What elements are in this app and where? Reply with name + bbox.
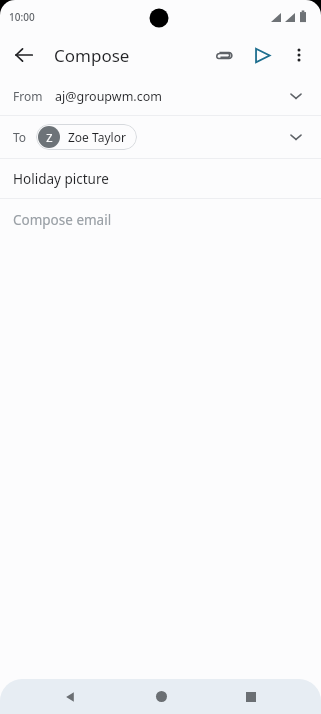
button[interactable]: Holiday picture: [0, 159, 321, 198]
button[interactable]: Back: [50, 679, 90, 714]
button[interactable]: Back: [6, 37, 42, 73]
staticText: Z: [46, 130, 53, 145]
button[interactable]: Attach file: [205, 36, 243, 74]
staticText: Compose email: [13, 211, 112, 229]
staticText: aj@groupwm.com: [55, 88, 162, 105]
button[interactable]: From: [0, 77, 321, 115]
button[interactable]: Send: [243, 36, 281, 74]
button[interactable]: Compose email: [0, 199, 321, 241]
button[interactable]: More options: [281, 37, 317, 73]
button[interactable]: Recent apps: [231, 679, 271, 714]
staticText: Compose: [54, 44, 130, 67]
button[interactable]: Z: [36, 124, 137, 150]
staticText: 10:00: [9, 10, 35, 24]
staticText: From: [13, 88, 43, 104]
staticText: To: [13, 129, 27, 145]
staticText: Holiday picture: [13, 170, 109, 188]
button[interactable]: Expand: [285, 85, 307, 107]
staticText: Zoe Taylor: [68, 129, 126, 145]
button[interactable]: Expand: [285, 126, 307, 148]
button[interactable]: To: [0, 116, 321, 158]
button[interactable]: Home: [141, 679, 181, 714]
